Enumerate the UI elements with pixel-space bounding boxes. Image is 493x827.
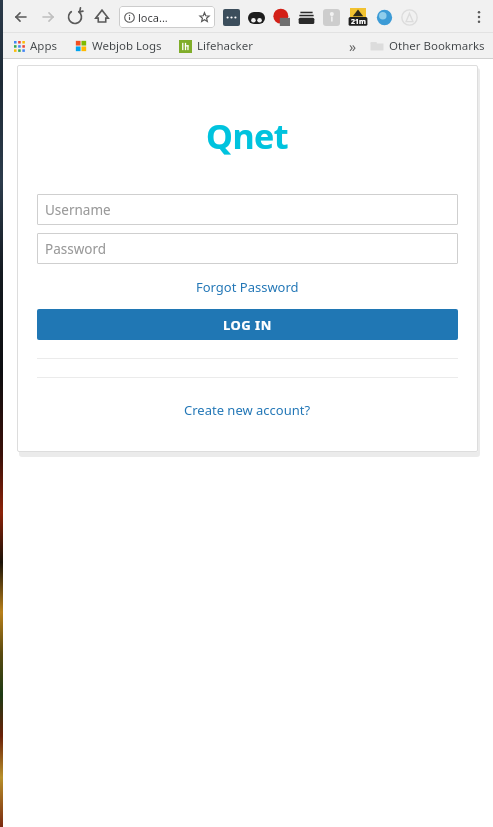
button[interactable]: Sync xyxy=(376,9,393,26)
button[interactable]: Timer 21m xyxy=(348,7,368,27)
button[interactable]: Extension xyxy=(323,9,340,26)
button[interactable]: Back xyxy=(9,5,33,29)
staticText: Username xyxy=(45,201,111,219)
staticText: Password xyxy=(45,240,107,258)
button[interactable]: Create new account? xyxy=(181,400,314,420)
button[interactable]: Webjob Logs xyxy=(73,36,164,56)
button[interactable]: Forward xyxy=(36,5,60,29)
button[interactable]: Reload xyxy=(63,5,87,29)
button[interactable]: Password xyxy=(37,233,458,264)
button[interactable]: Forgot Password xyxy=(193,277,302,297)
button[interactable]: Chrome menu xyxy=(468,6,490,28)
staticText: 21m xyxy=(351,17,366,27)
staticText: Qnet xyxy=(206,113,289,159)
staticText: Lifehacker xyxy=(197,38,253,54)
button[interactable]: Ad blocker xyxy=(273,9,290,26)
staticText: Webjob Logs xyxy=(92,38,162,54)
button[interactable]: Lifehacker xyxy=(177,36,255,56)
button[interactable]: Home xyxy=(90,5,114,29)
staticText: loca... xyxy=(138,10,168,25)
button[interactable]: Extension xyxy=(223,9,240,26)
button[interactable]: Username xyxy=(37,194,458,225)
staticText: » xyxy=(349,37,357,56)
staticText: Apps xyxy=(30,38,58,54)
staticText: Other Bookmarks xyxy=(389,38,485,54)
button[interactable]: Extension xyxy=(401,9,418,26)
button[interactable]: loca... xyxy=(119,6,215,28)
staticText: Create new account? xyxy=(184,401,311,419)
button[interactable]: LOG IN xyxy=(37,309,458,340)
button[interactable]: Apps xyxy=(11,36,60,56)
button[interactable]: Other Bookmarks xyxy=(368,36,487,56)
staticText: LOG IN xyxy=(223,316,272,334)
staticText: Forgot Password xyxy=(196,278,299,296)
button[interactable]: Extension xyxy=(248,9,265,26)
button[interactable]: Print xyxy=(298,9,315,26)
button[interactable]: More bookmarks xyxy=(344,36,362,56)
